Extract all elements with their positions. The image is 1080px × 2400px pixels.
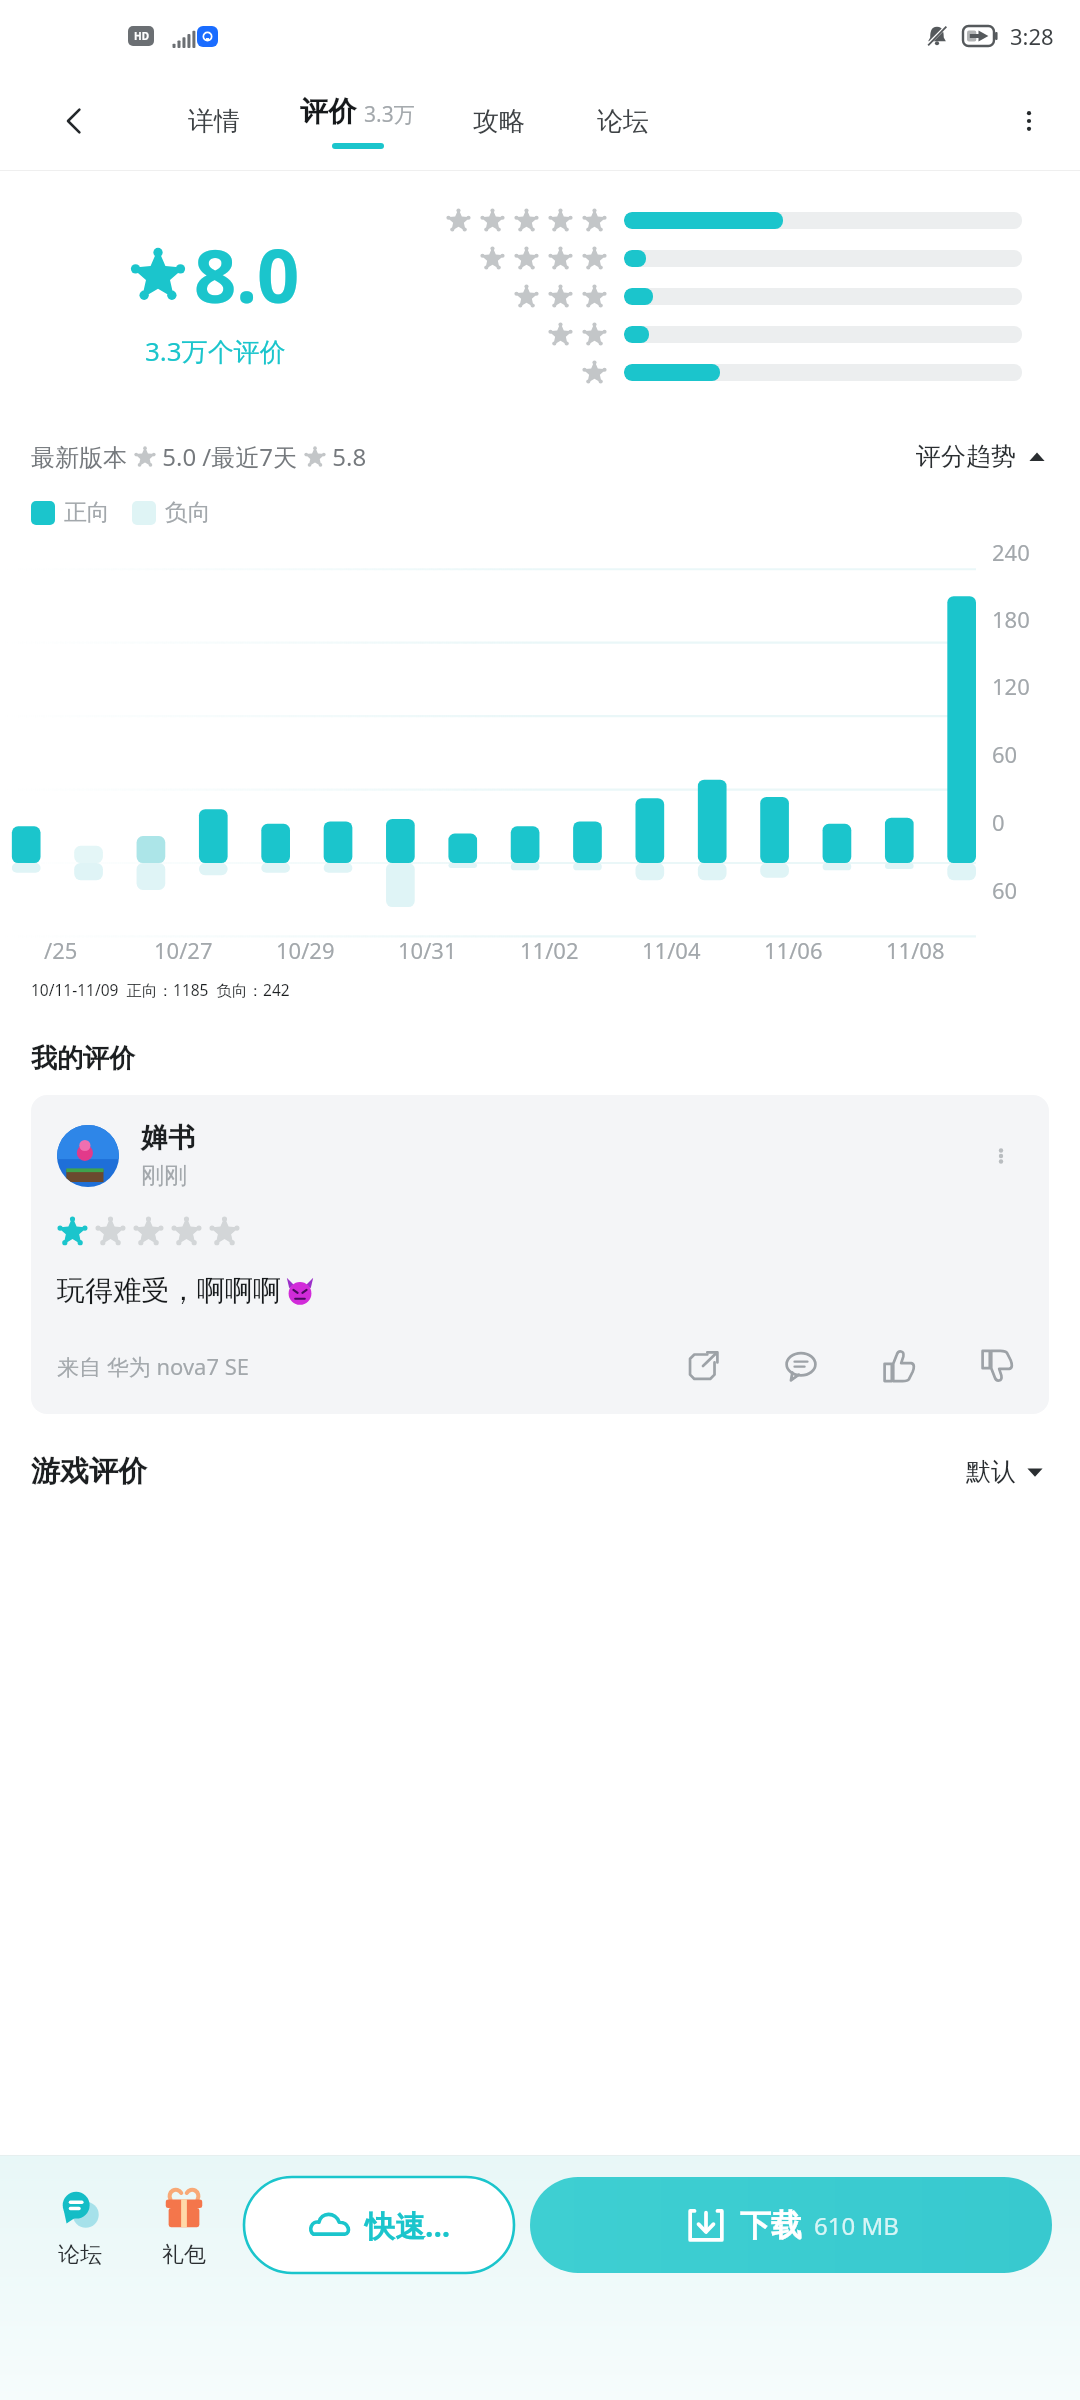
button[interactable]: 论坛 xyxy=(28,2177,132,2269)
button[interactable]: 详情 xyxy=(176,95,252,148)
button[interactable]: 论坛 xyxy=(585,95,661,148)
staticText: 120 xyxy=(992,671,1030,701)
staticText: 10/11-11/09 正向：1185 负向：242 xyxy=(31,979,290,1000)
staticText: 180 xyxy=(992,604,1030,634)
staticText: 评分趋势 xyxy=(916,441,1016,472)
staticText: 5.0 /最近7天 xyxy=(156,440,304,473)
staticText: 60 xyxy=(992,739,1018,769)
staticText: 3:28 xyxy=(1010,21,1054,51)
staticText: 11/02 xyxy=(520,935,579,965)
button[interactable]: Share xyxy=(677,1340,729,1392)
staticText: 10/29 xyxy=(276,935,335,965)
staticText: 攻略 xyxy=(473,105,525,138)
button[interactable]: Like xyxy=(873,1340,925,1392)
staticText: 11/04 xyxy=(642,935,701,965)
staticText: 论坛 xyxy=(597,105,649,138)
button[interactable]: 评分趋势 xyxy=(910,435,1052,478)
button[interactable]: 礼包 xyxy=(132,2177,236,2269)
staticText: 礼包 xyxy=(162,2241,206,2269)
staticText: 0 xyxy=(992,807,1005,837)
staticText: 评价 xyxy=(300,94,356,129)
staticText: 下载 xyxy=(740,2206,802,2245)
staticText: HD xyxy=(134,29,149,43)
button[interactable]: 默认 xyxy=(958,1448,1052,1495)
button[interactable]: More xyxy=(979,1134,1023,1178)
staticText: /25 xyxy=(44,935,78,965)
button[interactable]: 婵书 xyxy=(31,1095,1049,1414)
button[interactable]: Comment xyxy=(775,1340,827,1392)
staticText: 240 xyxy=(992,537,1030,567)
button[interactable]: 评价 xyxy=(300,94,415,149)
staticText: 婵书 xyxy=(141,1121,195,1155)
staticText: 10/31 xyxy=(398,935,457,965)
staticText: 负向 xyxy=(165,498,211,527)
staticText: 10/27 xyxy=(154,935,213,965)
staticText: 60 xyxy=(992,875,1018,905)
staticText: 11/06 xyxy=(764,935,823,965)
button[interactable]: More options xyxy=(1002,94,1056,148)
staticText: 3.3万 xyxy=(364,100,415,129)
staticText: 8.0 xyxy=(194,224,300,325)
staticText: 5.8 xyxy=(326,440,367,473)
button[interactable]: 快速... xyxy=(244,2177,514,2273)
staticText: 游戏评价 xyxy=(31,1453,147,1490)
staticText: 玩得难受，啊啊啊 xyxy=(57,1273,281,1308)
button[interactable]: 攻略 xyxy=(461,95,537,148)
staticText: 快速... xyxy=(365,2205,451,2246)
staticText: 刚刚 xyxy=(141,1161,187,1190)
button[interactable]: Back xyxy=(46,93,102,149)
staticText: 我的评价 xyxy=(31,1042,135,1075)
staticText: 最新版本 xyxy=(31,440,134,473)
staticText: 3.3万个评价 xyxy=(145,333,286,369)
staticText: 详情 xyxy=(188,105,240,138)
staticText: 610 MB xyxy=(814,2209,899,2242)
button[interactable]: Dislike xyxy=(971,1340,1023,1392)
button[interactable]: 下载 xyxy=(530,2177,1052,2273)
staticText: 默认 xyxy=(966,1456,1016,1487)
staticText: 论坛 xyxy=(58,2241,102,2269)
staticText: 来自 华为 nova7 SE xyxy=(57,1351,250,1381)
staticText: 正向 xyxy=(64,498,110,527)
staticText: 11/08 xyxy=(886,935,945,965)
